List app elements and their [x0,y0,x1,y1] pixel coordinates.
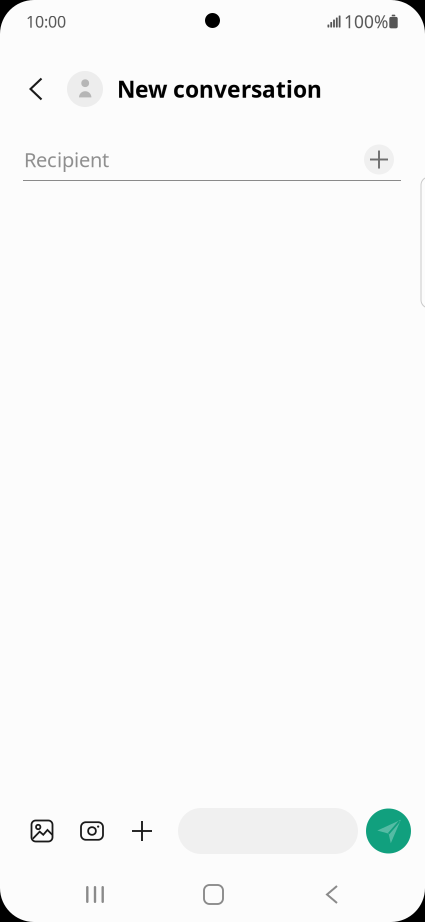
button[interactable]: Back [300,872,364,916]
staticText: Recipient [24,146,109,173]
button[interactable]: Recents [63,872,127,916]
button[interactable]: Camera [67,808,117,854]
button[interactable]: Back [13,62,59,116]
button[interactable]: Send [366,808,411,854]
button[interactable]: Add recipient [359,139,399,179]
staticText: New conversation [117,74,322,104]
button[interactable]: More options [117,808,167,854]
button[interactable]: Home [181,872,245,916]
staticText: 100% [344,10,388,33]
staticText: 10:00 [26,11,66,32]
button[interactable]: Attach image [17,808,67,854]
